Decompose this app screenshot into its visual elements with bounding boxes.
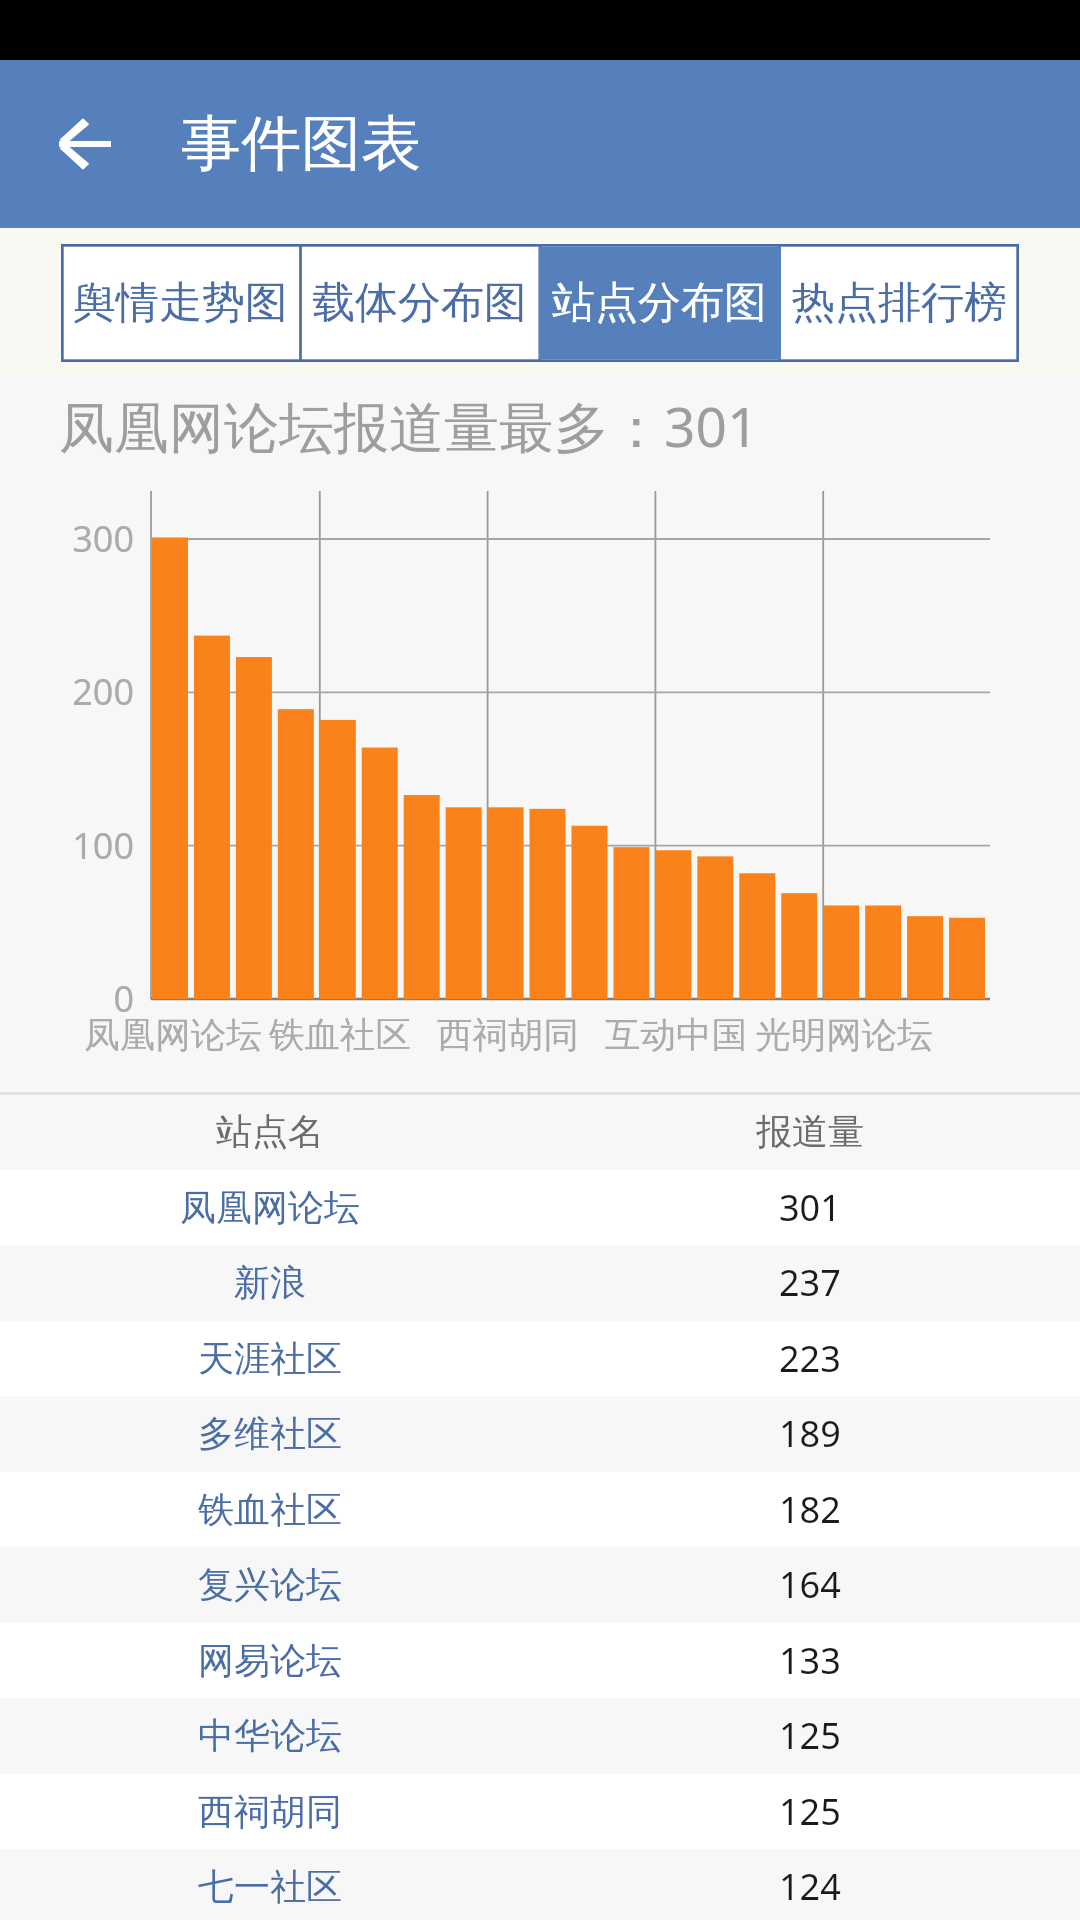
button[interactable]: 天涯社区 [0,1321,1080,1396]
staticText: 182 [779,1485,841,1534]
button[interactable]: 中华论坛 [0,1698,1080,1773]
staticText: 100 [0,821,134,870]
staticText: 西祠胡同 [198,1789,342,1834]
staticText: 凤凰网论坛报道量最多：301 [59,388,759,463]
staticText: 舆情走势图 [73,276,288,330]
staticText: 125 [779,1711,841,1760]
staticText: 站点分布图 [552,276,767,330]
staticText: 热点排行榜 [792,276,1007,330]
button[interactable]: 七一社区 [0,1849,1080,1920]
staticText: 125 [779,1787,841,1836]
staticText: 237 [779,1258,841,1307]
staticText: 西祠胡同 [398,1013,618,1058]
staticText: 复兴论坛 [198,1562,342,1607]
staticText: 铁血社区 [230,1013,450,1058]
staticText: 300 [0,514,134,563]
button[interactable]: 舆情走势图 [61,244,300,362]
staticText: 网易论坛 [198,1638,342,1683]
button[interactable]: 多维社区 [0,1396,1080,1471]
staticText: 站点名 [216,1109,324,1154]
staticText: 164 [779,1560,841,1609]
button[interactable]: 复兴论坛 [0,1547,1080,1622]
button[interactable]: 西祠胡同 [0,1774,1080,1849]
staticText: 凤凰网论坛 [63,1013,283,1058]
staticText: 200 [0,667,134,716]
button[interactable]: 站点分布图 [539,244,779,362]
button[interactable]: 铁血社区 [0,1472,1080,1547]
staticText: 天涯社区 [198,1336,342,1381]
staticText: 新浪 [234,1260,306,1305]
staticText: 多维社区 [198,1411,342,1456]
button[interactable]: 热点排行榜 [779,244,1019,362]
staticText: 中华论坛 [198,1713,342,1758]
staticText: 载体分布图 [312,276,527,330]
staticText: 189 [779,1409,841,1458]
staticText: 互动中国 [566,1013,786,1058]
staticText: 报道量 [756,1109,864,1154]
staticText: 铁血社区 [198,1487,342,1532]
staticText: 223 [779,1334,841,1383]
staticText: 301 [779,1183,841,1232]
button[interactable]: 载体分布图 [300,244,539,362]
staticText: 光明网论坛 [734,1013,954,1058]
staticText: 133 [779,1636,841,1685]
staticText: 0 [0,974,134,1023]
staticText: 事件图表 [181,106,421,182]
button[interactable]: Back [35,94,135,194]
staticText: 七一社区 [198,1864,342,1909]
staticText: 凤凰网论坛 [180,1185,360,1230]
button[interactable]: 凤凰网论坛 [0,1170,1080,1245]
staticText: 124 [779,1862,841,1911]
button[interactable]: 网易论坛 [0,1623,1080,1698]
button[interactable]: 新浪 [0,1245,1080,1320]
